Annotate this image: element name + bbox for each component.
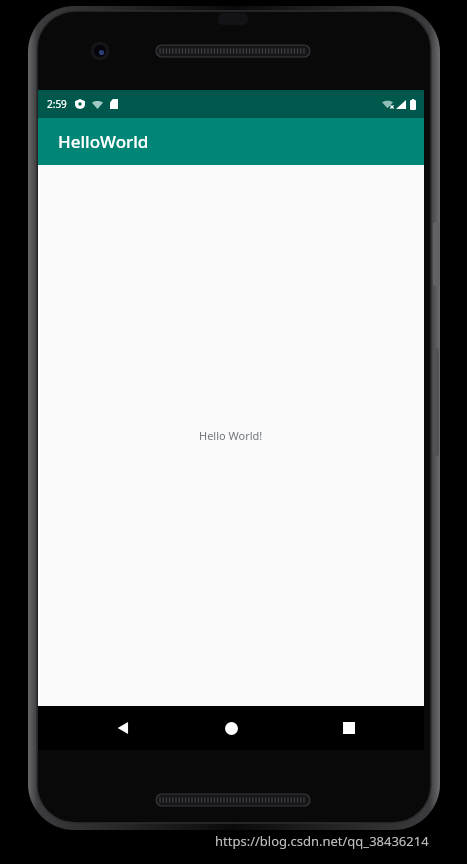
staticText: HelloWorld <box>58 130 149 153</box>
button[interactable]: HelloWorld <box>38 118 424 165</box>
button[interactable]: Recent apps <box>319 706 379 750</box>
staticText: 2:59 <box>47 97 67 111</box>
button[interactable]: Back <box>93 706 153 750</box>
staticText: https://blog.csdn.net/qq_38436214 <box>215 832 429 850</box>
staticText: Hello World! <box>199 428 263 443</box>
button[interactable]: Home <box>201 706 261 750</box>
